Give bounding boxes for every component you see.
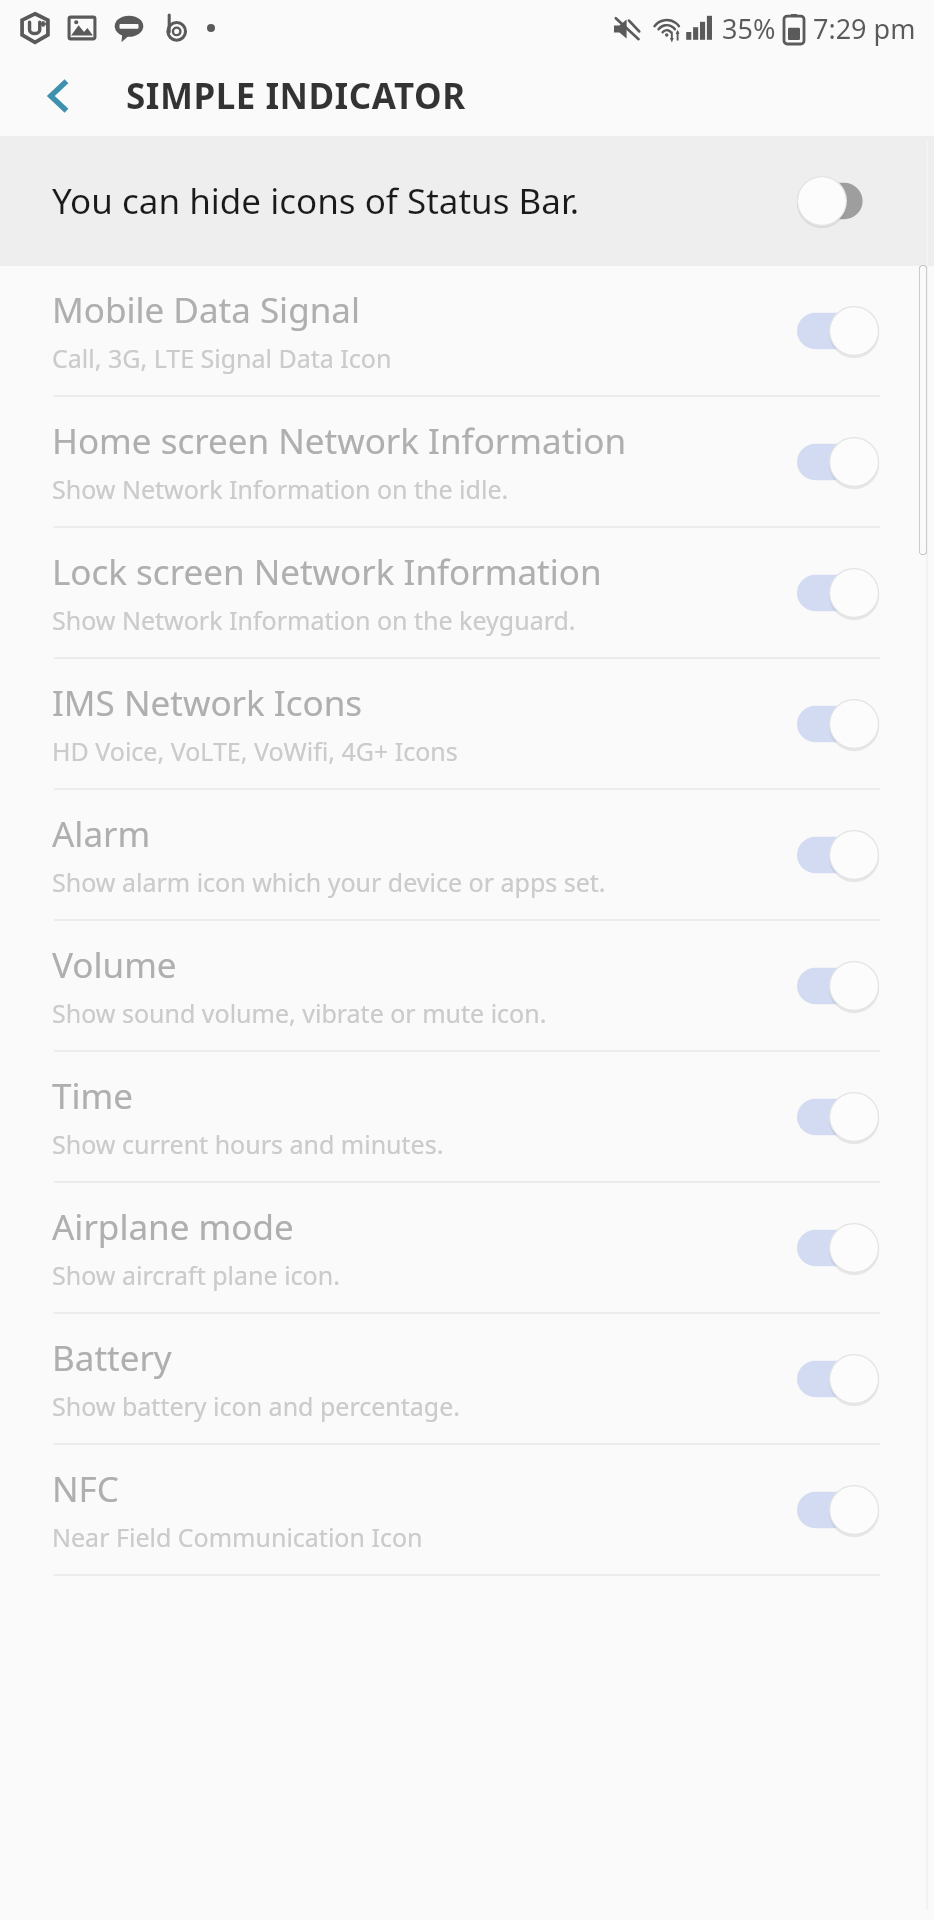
staticText: Mobile Data Signal (52, 286, 360, 334)
staticText: HD Voice, VoLTE, VoWifi, 4G+ Icons (52, 734, 458, 768)
staticText: IMS Network Icons (52, 679, 363, 727)
staticText: Volume (52, 941, 177, 989)
staticText: 35% (722, 10, 776, 47)
button[interactable]: On (797, 305, 879, 357)
staticText: Show alarm icon which your device or app… (52, 865, 606, 899)
button[interactable]: Time (0, 1052, 934, 1181)
staticText: You can hide icons of Status Bar. (52, 177, 580, 225)
button[interactable]: Airplane mode (0, 1183, 934, 1312)
button[interactable]: Back (24, 62, 92, 130)
staticText: Near Field Communication Icon (52, 1520, 423, 1554)
button[interactable]: Battery (0, 1314, 934, 1443)
staticText: Call, 3G, LTE Signal Data Icon (52, 341, 392, 375)
staticText: Airplane mode (52, 1203, 294, 1251)
staticText: Show battery icon and percentage. (52, 1389, 461, 1423)
staticText: Show current hours and minutes. (52, 1127, 444, 1161)
button[interactable]: Volume (0, 921, 934, 1050)
button[interactable]: Mobile Data Signal (0, 266, 934, 395)
staticText: Show Network Information on the idle. (52, 472, 509, 506)
button[interactable]: IMS Network Icons (0, 659, 934, 788)
button[interactable]: On (797, 829, 879, 881)
staticText: Lock screen Network Information (52, 548, 602, 596)
staticText: 7:29 pm (813, 10, 916, 47)
button[interactable]: On (797, 960, 879, 1012)
button[interactable]: On (797, 1091, 879, 1143)
button[interactable]: On (797, 1222, 879, 1274)
button[interactable]: On (797, 1484, 879, 1536)
button[interactable]: Alarm (0, 790, 934, 919)
staticText: Show sound volume, vibrate or mute icon. (52, 996, 547, 1030)
button[interactable]: Home screen Network Information (0, 397, 934, 526)
staticText: Show Network Information on the keyguard… (52, 603, 576, 637)
button[interactable]: On (797, 436, 879, 488)
staticText: Alarm (52, 810, 151, 858)
staticText: SIMPLE INDICATOR (126, 72, 466, 120)
button[interactable]: You can hide icons of Status Bar. (0, 136, 934, 266)
staticText: Show aircraft plane icon. (52, 1258, 340, 1292)
staticText: Battery (52, 1334, 172, 1382)
button[interactable]: Lock screen Network Information (0, 528, 934, 657)
button[interactable]: Off (797, 175, 879, 227)
button[interactable]: On (797, 1353, 879, 1405)
staticText: NFC (52, 1465, 119, 1513)
staticText: Home screen Network Information (52, 417, 627, 465)
button[interactable]: NFC (0, 1445, 934, 1574)
staticText: Time (52, 1072, 133, 1120)
button[interactable]: On (797, 698, 879, 750)
button[interactable]: On (797, 567, 879, 619)
